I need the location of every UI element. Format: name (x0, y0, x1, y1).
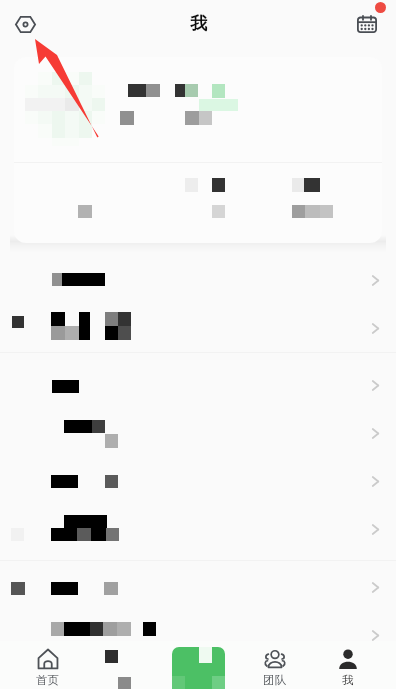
staticText: 团队 (263, 673, 286, 687)
button[interactable]: Item 8 (0, 611, 396, 659)
button[interactable]: Item 4 (0, 409, 396, 457)
button[interactable]: Stat 3 (259, 163, 382, 243)
button[interactable]: 团队 (255, 641, 294, 689)
button[interactable]: Stat 2 (136, 163, 259, 243)
button[interactable]: Stat 1 (14, 57, 382, 243)
staticText: 首页 (36, 673, 59, 687)
button[interactable]: Item 1 (0, 256, 396, 304)
staticText: 我 (342, 673, 354, 687)
button[interactable]: Add (172, 647, 225, 689)
staticText: 我 (190, 13, 207, 34)
button[interactable]: Item 7 (0, 563, 396, 611)
button[interactable]: Tab 2 (99, 641, 138, 689)
button[interactable]: Scan (8, 7, 42, 41)
button[interactable]: 首页 (28, 641, 67, 689)
button[interactable]: Item 3 (0, 361, 396, 409)
button[interactable]: Item 5 (0, 457, 396, 505)
button[interactable]: 我 (328, 641, 367, 689)
button[interactable]: Item 2 (0, 304, 396, 352)
button[interactable]: Stat 1 (14, 163, 136, 243)
button[interactable]: Calendar (352, 9, 381, 38)
button[interactable]: Item 6 (0, 505, 396, 553)
